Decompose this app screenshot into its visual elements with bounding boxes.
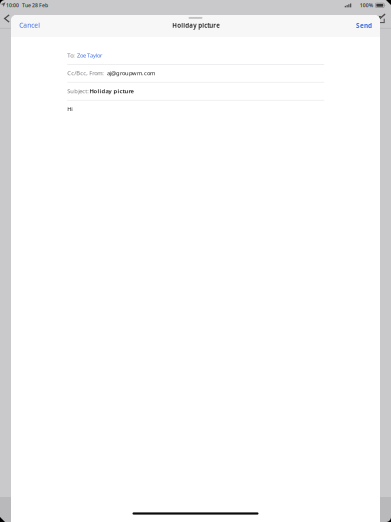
staticText: Send (356, 21, 372, 30)
staticText: To: (67, 51, 75, 59)
button[interactable]: Cancel (13, 16, 47, 34)
staticText: Cc/Bcc, From: (67, 69, 104, 77)
button[interactable]: Compose (375, 11, 389, 25)
staticText: Tue 28 Feb (22, 2, 48, 9)
staticText: aj@groupwm.com (107, 69, 155, 77)
staticText: Zoe Taylor (77, 51, 102, 59)
staticText: Subject: (67, 87, 89, 95)
button[interactable]: Send (350, 16, 378, 34)
staticText: 100% (360, 2, 373, 9)
staticText: Cancel (19, 21, 40, 30)
staticText: Holiday picture (172, 21, 220, 29)
staticText: Holiday picture (89, 87, 133, 95)
staticText: Hi (67, 105, 72, 113)
button[interactable]: Back (0, 11, 14, 27)
staticText: 10:00 (6, 2, 19, 9)
